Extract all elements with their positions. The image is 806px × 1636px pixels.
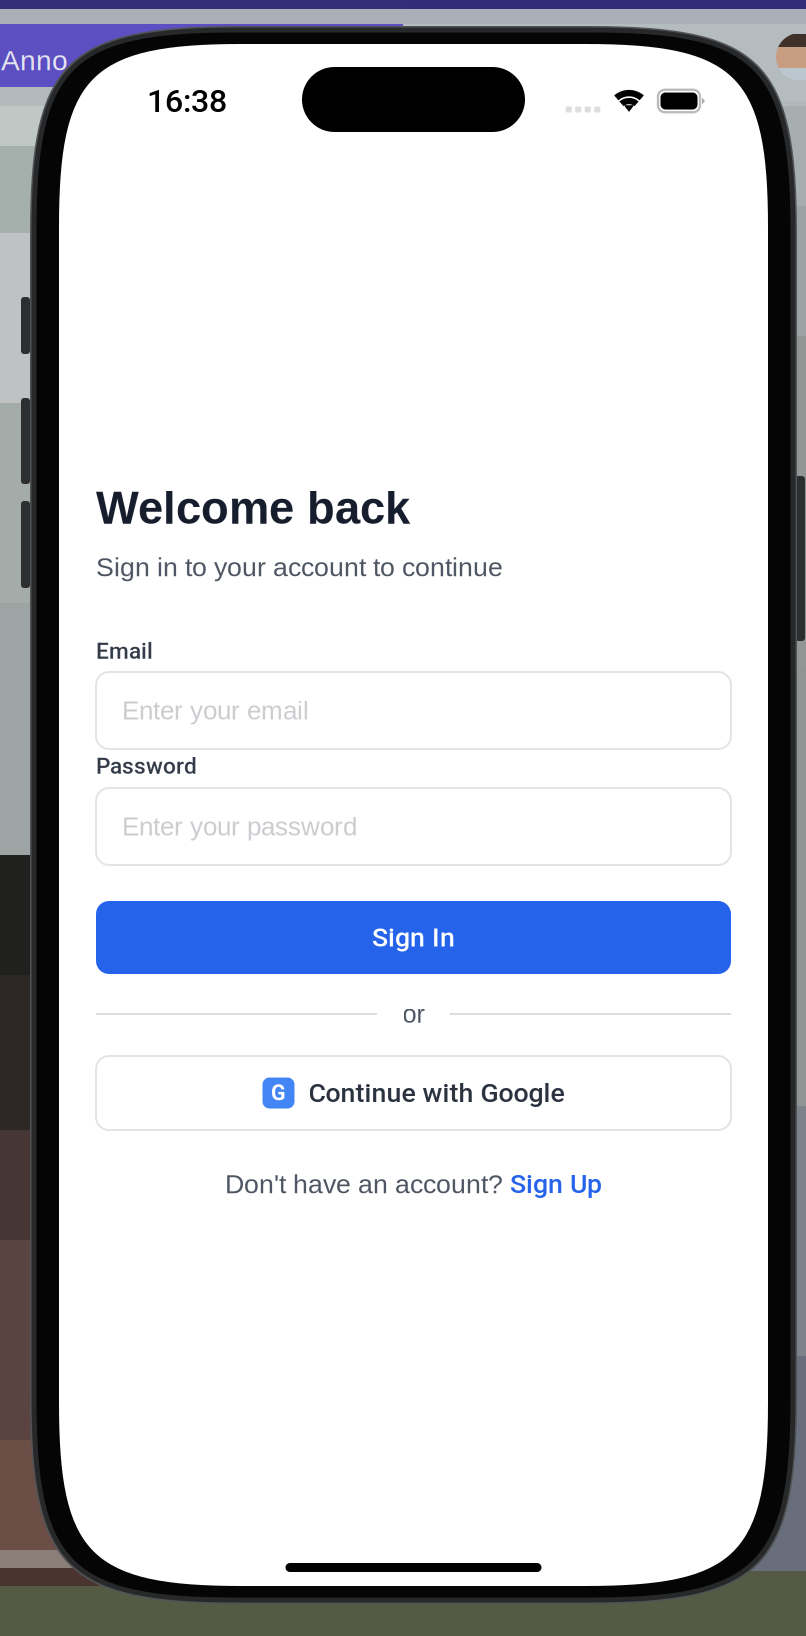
staticText: Welcome back — [96, 483, 410, 533]
staticText: or — [402, 1000, 424, 1028]
staticText: Enter your email — [122, 696, 309, 725]
staticText: Password — [96, 753, 197, 779]
staticText: G — [271, 1080, 286, 1105]
button[interactable]: Enter your email — [96, 672, 731, 749]
staticText: Email — [96, 638, 153, 664]
staticText: Sign in to your account to continue — [96, 552, 503, 582]
button[interactable]: Don't have an account? — [96, 1171, 731, 1197]
staticText: Sign Up — [510, 1168, 602, 1200]
staticText: Continue with Google — [308, 1077, 564, 1109]
staticText: 16:38 — [147, 82, 227, 120]
button[interactable]: Enter your password — [96, 788, 731, 865]
staticText: Don't have an account? — [225, 1169, 510, 1199]
staticText: Anno — [1, 45, 68, 76]
staticText: Enter your password — [122, 812, 357, 841]
staticText: Sign In — [372, 922, 455, 953]
button[interactable]: Sign In — [96, 901, 731, 974]
button[interactable]: G — [96, 1056, 731, 1130]
